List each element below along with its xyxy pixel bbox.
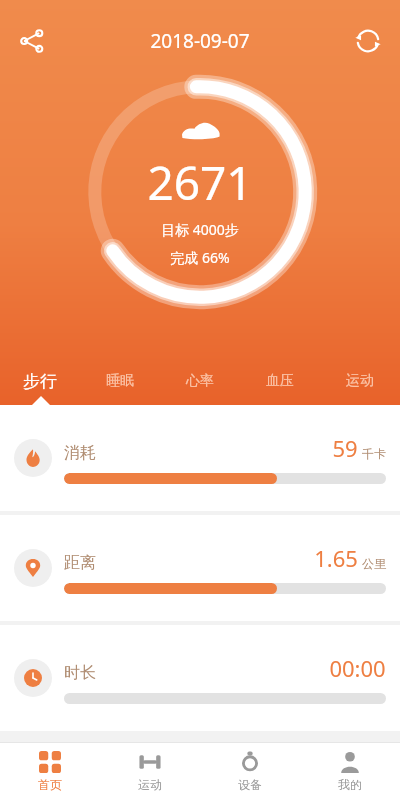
staticText: 59 <box>332 433 358 463</box>
staticText: 2671 <box>147 151 253 214</box>
button[interactable]: 我的 <box>300 742 400 800</box>
staticText: 睡眠 <box>106 372 134 390</box>
staticText: 我的 <box>338 777 362 792</box>
staticText: 血压 <box>266 372 294 390</box>
staticText: 公里 <box>362 556 386 571</box>
staticText: 1.65 <box>314 543 358 573</box>
staticText: 步行 <box>23 371 57 392</box>
button[interactable]: 血压 <box>240 357 320 405</box>
staticText: 00:00 <box>329 653 386 683</box>
staticText: 时长 <box>64 663 96 683</box>
button[interactable]: 首页 <box>0 742 100 800</box>
staticText: 目标 4000步 <box>161 220 239 239</box>
button[interactable]: 步行 <box>0 357 80 405</box>
button[interactable]: 运动 <box>100 742 200 800</box>
button[interactable]: 时长 <box>0 625 400 731</box>
staticText: 消耗 <box>64 443 96 463</box>
staticText: 运动 <box>138 777 162 792</box>
button[interactable]: Share <box>8 17 56 65</box>
button[interactable]: 运动 <box>320 357 400 405</box>
staticText: 2018-09-07 <box>150 28 250 54</box>
button[interactable]: 心率 <box>160 357 240 405</box>
button[interactable]: 消耗 <box>0 405 400 511</box>
staticText: 首页 <box>38 777 62 792</box>
staticText: 心率 <box>186 372 214 390</box>
staticText: 完成 66% <box>170 248 230 267</box>
staticText: 设备 <box>238 777 262 792</box>
button[interactable]: 距离 <box>0 515 400 621</box>
button[interactable]: 设备 <box>200 742 300 800</box>
staticText: 运动 <box>346 372 374 390</box>
staticText: 距离 <box>64 553 96 573</box>
button[interactable]: 睡眠 <box>80 357 160 405</box>
button[interactable]: Refresh <box>344 17 392 65</box>
staticText: 千卡 <box>362 446 386 461</box>
